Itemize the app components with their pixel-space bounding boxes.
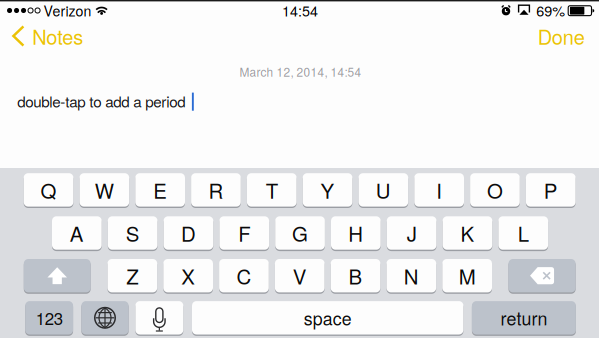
staticText: U bbox=[376, 175, 391, 204]
button[interactable]: T bbox=[247, 172, 297, 207]
staticText: R bbox=[208, 175, 223, 204]
button[interactable]: U bbox=[358, 172, 408, 207]
staticText: Q bbox=[40, 175, 56, 204]
staticText: V bbox=[293, 261, 307, 290]
button[interactable]: Delete bbox=[508, 258, 576, 293]
button[interactable]: V bbox=[275, 258, 325, 293]
staticText: 69% bbox=[536, 0, 565, 21]
staticText: March 12, 2014, 14:54 bbox=[239, 63, 361, 80]
staticText: G bbox=[292, 218, 308, 248]
staticText: X bbox=[181, 261, 195, 290]
staticText: S bbox=[126, 218, 140, 248]
button[interactable]: H bbox=[331, 216, 381, 250]
button[interactable]: R bbox=[191, 172, 241, 207]
staticText: F bbox=[238, 218, 250, 248]
button[interactable]: Z bbox=[107, 258, 157, 293]
button[interactable]: O bbox=[470, 172, 520, 207]
staticText: P bbox=[544, 175, 558, 204]
button[interactable]: Notes bbox=[7, 18, 88, 54]
staticText: Notes bbox=[32, 22, 83, 50]
button[interactable]: S bbox=[108, 216, 157, 250]
button[interactable]: Dictation bbox=[135, 300, 183, 335]
button[interactable]: M bbox=[442, 258, 492, 293]
button[interactable]: F bbox=[219, 216, 269, 250]
button[interactable]: G bbox=[275, 216, 325, 250]
button[interactable]: K bbox=[443, 216, 492, 250]
staticText: M bbox=[459, 261, 476, 290]
button[interactable]: 123 bbox=[25, 300, 73, 335]
button[interactable]: N bbox=[386, 258, 436, 293]
staticText: D bbox=[181, 218, 196, 248]
staticText: H bbox=[348, 218, 363, 248]
staticText: 14:54 bbox=[282, 0, 318, 20]
button[interactable]: return bbox=[472, 300, 576, 335]
staticText: A bbox=[70, 218, 84, 248]
staticText: K bbox=[460, 218, 474, 248]
button[interactable]: P bbox=[526, 172, 576, 207]
staticText: return bbox=[500, 305, 547, 331]
button[interactable]: Next keyboard bbox=[81, 300, 129, 335]
button[interactable]: X bbox=[163, 258, 213, 293]
button[interactable]: Y bbox=[303, 172, 352, 207]
staticText: C bbox=[236, 261, 251, 290]
staticText: J bbox=[407, 218, 417, 248]
staticText: E bbox=[153, 175, 167, 204]
staticText: double-tap to add a period bbox=[17, 90, 185, 112]
button[interactable]: D bbox=[164, 216, 213, 250]
button[interactable]: E bbox=[135, 172, 185, 207]
staticText: B bbox=[349, 261, 363, 290]
button[interactable]: C bbox=[219, 258, 269, 293]
button[interactable]: Q bbox=[24, 172, 73, 207]
button[interactable]: W bbox=[79, 172, 129, 207]
button[interactable]: space bbox=[192, 300, 463, 335]
button[interactable]: Done bbox=[529, 18, 594, 54]
staticText: W bbox=[95, 175, 114, 204]
button[interactable]: B bbox=[331, 258, 380, 293]
button[interactable]: A bbox=[52, 216, 102, 250]
staticText: 123 bbox=[36, 306, 63, 330]
staticText: space bbox=[304, 305, 352, 330]
staticText: N bbox=[404, 261, 419, 290]
button[interactable]: I bbox=[414, 172, 464, 207]
staticText: L bbox=[518, 218, 529, 248]
staticText: Z bbox=[126, 261, 138, 290]
staticText: Done bbox=[538, 22, 585, 50]
button[interactable]: L bbox=[498, 216, 548, 250]
staticText: Verizon bbox=[43, 0, 91, 20]
button[interactable]: J bbox=[387, 216, 436, 250]
staticText: T bbox=[266, 175, 278, 204]
staticText: I bbox=[436, 175, 442, 204]
staticText: Y bbox=[321, 175, 335, 204]
staticText: O bbox=[487, 175, 503, 204]
button[interactable]: Shift bbox=[24, 258, 91, 293]
